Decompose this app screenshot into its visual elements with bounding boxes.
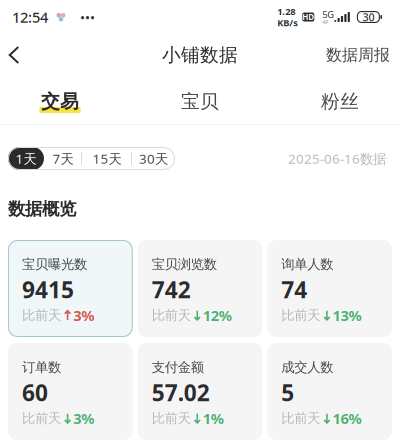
staticText: 1% — [203, 408, 224, 428]
button[interactable]: 宝贝浏览数 — [138, 240, 262, 337]
staticText: 小铺数据 — [162, 43, 238, 66]
staticText: 成交人数 — [281, 359, 333, 375]
staticText: 宝贝浏览数 — [152, 256, 217, 272]
button[interactable]: 15天 — [82, 147, 132, 170]
staticText: 比前天 — [281, 410, 320, 426]
staticText: 12:54 — [12, 7, 48, 27]
staticText: 7天 — [52, 150, 73, 167]
button[interactable]: Back — [0, 34, 28, 76]
button[interactable]: 宝贝曝光数 — [8, 240, 133, 337]
staticText: 比前天 — [22, 410, 61, 426]
staticText: 比前天 — [152, 410, 191, 426]
button[interactable]: 询单人数 — [267, 240, 392, 337]
button[interactable]: 交易 — [14, 85, 106, 113]
staticText: 3% — [73, 305, 94, 325]
staticText: 9415 — [22, 274, 74, 304]
staticText: 60 — [22, 377, 48, 407]
staticText: 16% — [332, 408, 361, 428]
staticText: 交易 — [41, 90, 79, 113]
staticText: 询单人数 — [281, 256, 333, 272]
button[interactable]: 宝贝 — [154, 85, 246, 113]
staticText: 2025-06-16数据 — [288, 150, 386, 167]
staticText: 30天 — [139, 150, 168, 167]
staticText: 比前天 — [152, 307, 191, 323]
staticText: 订单数 — [22, 359, 61, 375]
staticText: 数据周报 — [326, 45, 390, 65]
staticText: 数据概览 — [8, 198, 76, 220]
staticText: 宝贝 — [181, 90, 219, 113]
staticText: 15天 — [92, 150, 121, 167]
button[interactable]: 粉丝 — [294, 85, 386, 113]
staticText: 74 — [281, 274, 307, 304]
button[interactable]: 成交人数 — [267, 343, 392, 440]
button[interactable]: 1天 — [8, 147, 44, 170]
staticText: 13% — [332, 305, 361, 325]
button[interactable]: 数据周报 — [316, 34, 400, 76]
staticText: HD — [302, 12, 314, 22]
staticText: 30 — [362, 10, 374, 24]
staticText: 4P — [322, 19, 328, 26]
staticText: 5G — [322, 8, 334, 21]
staticText: 粉丝 — [321, 90, 359, 113]
staticText: 支付金额 — [152, 359, 204, 375]
staticText: 宝贝曝光数 — [22, 256, 87, 272]
button[interactable]: 30天 — [132, 147, 175, 170]
button[interactable]: 支付金额 — [138, 343, 262, 440]
staticText: 比前天 — [281, 307, 320, 323]
staticText: 3% — [73, 408, 94, 428]
staticText: 742 — [152, 274, 191, 304]
staticText: 比前天 — [22, 307, 61, 323]
staticText: 57.02 — [152, 377, 210, 407]
staticText: KB/s — [277, 16, 298, 29]
button[interactable]: 订单数 — [8, 343, 133, 440]
staticText: ••• — [80, 8, 95, 26]
staticText: 5 — [281, 377, 294, 407]
staticText: 1天 — [15, 150, 36, 167]
staticText: 12% — [203, 305, 232, 325]
button[interactable]: 7天 — [44, 147, 82, 170]
staticText: 1.28 — [277, 5, 295, 17]
